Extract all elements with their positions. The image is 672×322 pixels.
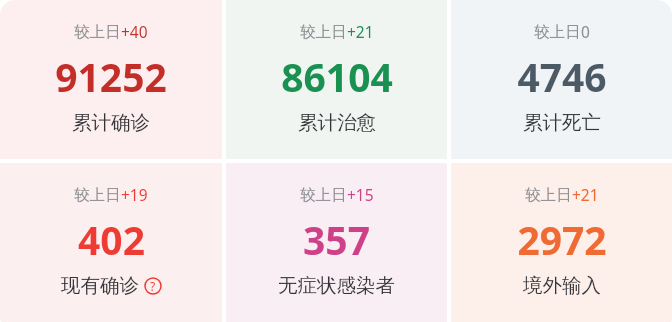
staticText: +21: [347, 21, 374, 42]
staticText: ?: [150, 278, 156, 294]
staticText: 0: [581, 21, 590, 42]
staticText: 无症状感染者: [278, 273, 395, 298]
staticText: 现有确诊: [61, 273, 139, 298]
staticText: 累计治愈: [298, 110, 376, 135]
staticText: 累计死亡: [523, 110, 601, 135]
button[interactable]: 较上日: [451, 0, 672, 159]
button[interactable]: 较上日: [451, 163, 672, 322]
staticText: 境外输入: [523, 273, 601, 298]
staticText: 较上日: [300, 22, 347, 42]
staticText: 较上日: [525, 185, 572, 205]
button[interactable]: 较上日: [0, 163, 222, 322]
button[interactable]: 较上日: [0, 0, 222, 159]
staticText: 2972: [517, 213, 607, 266]
staticText: +40: [121, 21, 148, 42]
staticText: 累计确诊: [72, 110, 150, 135]
staticText: 91252: [55, 50, 167, 103]
staticText: 4746: [517, 50, 607, 103]
staticText: 357: [303, 213, 370, 266]
button[interactable]: 较上日: [226, 0, 447, 159]
button[interactable]: Help about current confirmed cases: [144, 277, 162, 295]
staticText: +19: [121, 184, 148, 205]
staticText: 较上日: [300, 185, 347, 205]
staticText: +15: [347, 184, 374, 205]
staticText: +21: [572, 184, 599, 205]
staticText: 较上日: [534, 22, 581, 42]
button[interactable]: 较上日: [226, 163, 447, 322]
staticText: 402: [78, 213, 145, 266]
staticText: 较上日: [74, 22, 121, 42]
staticText: 86104: [281, 50, 393, 103]
staticText: 较上日: [74, 185, 121, 205]
